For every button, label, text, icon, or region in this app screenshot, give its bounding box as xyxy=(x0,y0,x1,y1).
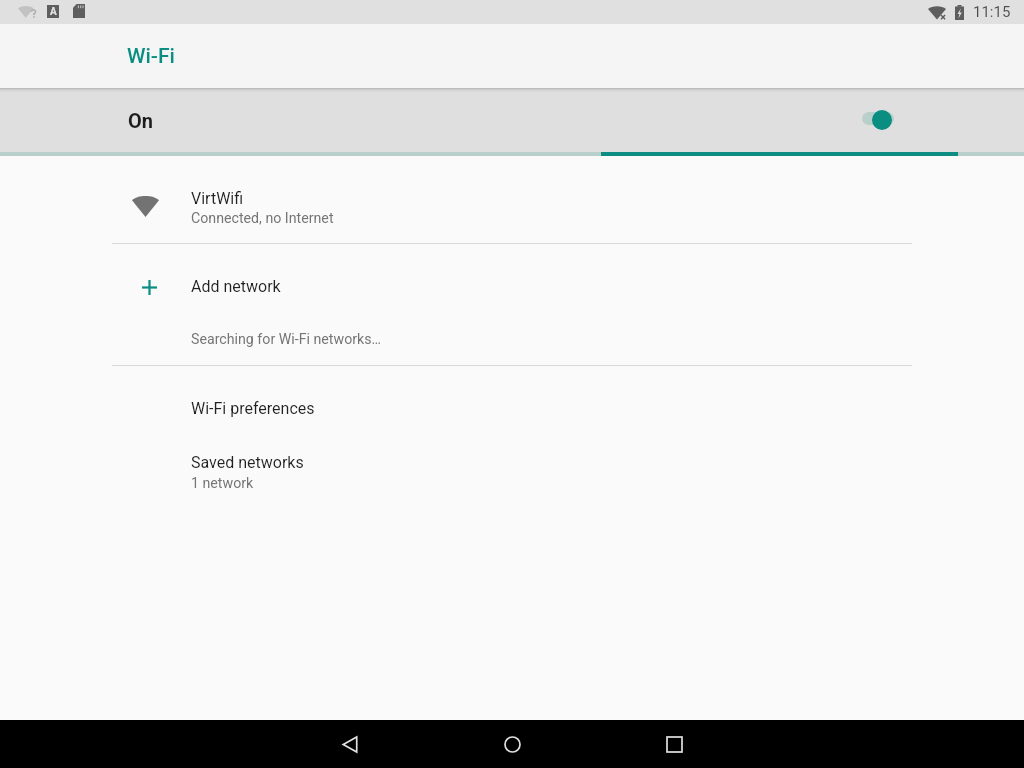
staticText: Add network xyxy=(191,277,281,296)
button[interactable]: Recent apps xyxy=(650,720,698,768)
staticText: 1 network xyxy=(191,475,254,492)
staticText: Wi-Fi preferences xyxy=(191,399,315,418)
staticText: Connected, no Internet xyxy=(191,210,334,227)
staticText: A xyxy=(50,6,57,18)
staticText: Wi-Fi xyxy=(127,44,175,69)
button[interactable]: Add network xyxy=(0,244,1024,310)
button[interactable]: Home xyxy=(488,720,536,768)
button[interactable]: Saved networks xyxy=(0,428,1024,504)
button[interactable]: Back xyxy=(326,720,374,768)
staticText: On xyxy=(128,109,153,132)
staticText: Searching for Wi-Fi networks… xyxy=(191,331,382,348)
button[interactable]: Wi-Fi preferences xyxy=(0,366,1024,428)
button[interactable]: Wi-Fi on/off xyxy=(850,92,906,140)
button[interactable]: VirtWifi xyxy=(0,156,1024,243)
staticText: VirtWifi xyxy=(191,189,244,208)
staticText: 11:15 xyxy=(973,3,1011,21)
button[interactable]: On xyxy=(0,90,1024,152)
staticText: Saved networks xyxy=(191,453,304,472)
